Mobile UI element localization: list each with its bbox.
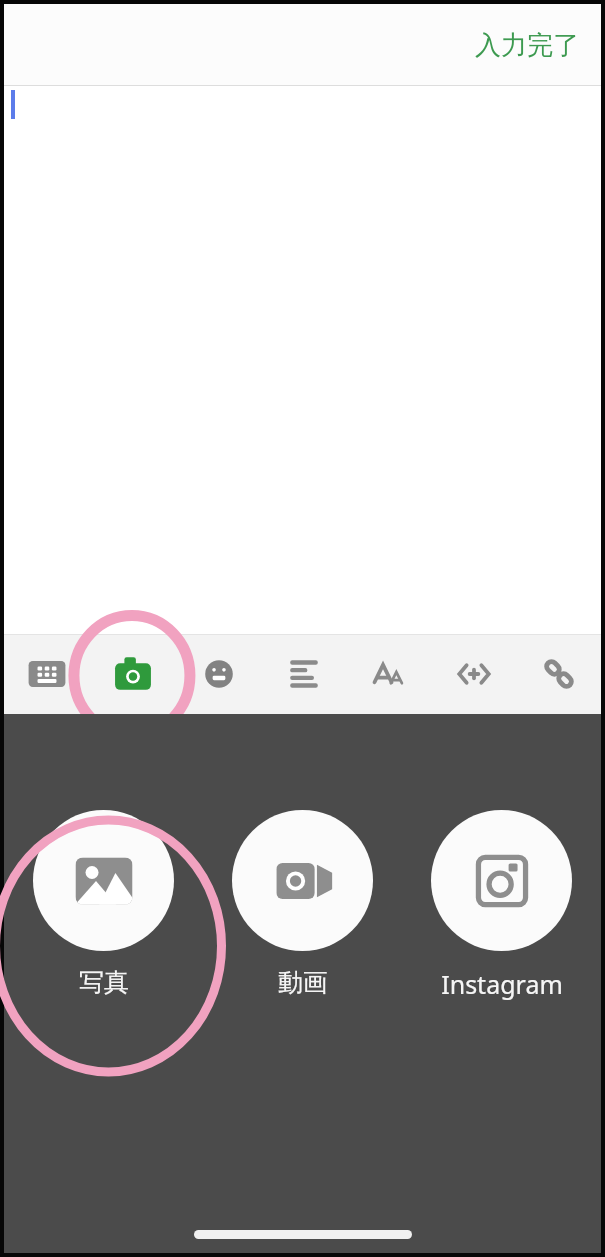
staticText: Instagram: [441, 967, 563, 1001]
staticText: 写真: [79, 967, 129, 998]
button[interactable]: Keyboard: [4, 634, 90, 714]
staticText: 入力完了: [475, 29, 579, 62]
button[interactable]: 入力完了: [467, 21, 587, 70]
button[interactable]: Align text: [261, 634, 346, 714]
button[interactable]: 動画: [203, 810, 402, 998]
button[interactable]: 写真: [4, 810, 203, 998]
button[interactable]: Insert code: [431, 634, 516, 714]
button[interactable]: Instagram: [402, 810, 601, 1001]
staticText: 動画: [278, 967, 328, 998]
button[interactable]: Camera: [90, 634, 176, 714]
button[interactable]: Insert link: [516, 634, 601, 714]
button[interactable]: Emoji: [176, 634, 261, 714]
button[interactable]: Font size: [346, 634, 431, 714]
